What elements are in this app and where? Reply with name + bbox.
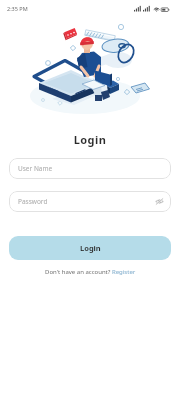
- staticText: Login: [80, 243, 101, 253]
- button[interactable]: Show password: [154, 196, 165, 207]
- button[interactable]: User Name: [9, 158, 171, 179]
- staticText: 2:35 PM: [7, 5, 28, 12]
- staticText: User Name: [18, 164, 53, 173]
- staticText: Password: [18, 197, 48, 206]
- staticText: Don't have an account?: [45, 268, 112, 276]
- staticText: Login: [0, 132, 180, 147]
- staticText: Register: [112, 268, 136, 276]
- button[interactable]: Password: [9, 191, 171, 212]
- button[interactable]: Register: [112, 268, 136, 276]
- button[interactable]: Login: [9, 236, 171, 260]
